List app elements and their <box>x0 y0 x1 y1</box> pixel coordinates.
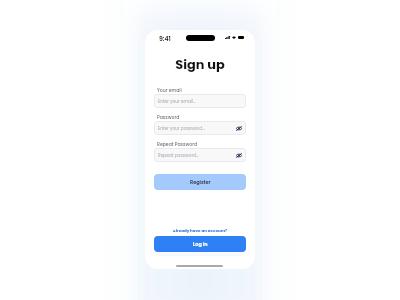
staticText: Password <box>157 114 180 120</box>
staticText: Register <box>190 179 211 186</box>
staticText: Your email <box>157 87 182 93</box>
button[interactable]: Already have an account? <box>145 228 255 234</box>
button[interactable]: Repeat password... <box>154 148 246 162</box>
staticText: Enter your password... <box>158 125 236 131</box>
staticText: 9:41 <box>159 34 171 43</box>
button[interactable]: Log in <box>154 236 246 252</box>
button[interactable]: Register <box>154 174 246 190</box>
button[interactable]: Enter your password... <box>154 121 246 135</box>
other: Toggle password visibility <box>236 153 242 158</box>
button[interactable]: Enter your email... <box>154 94 246 108</box>
staticText: Repeat Password <box>157 141 198 147</box>
staticText: Enter your email... <box>158 98 242 104</box>
staticText: Sign up <box>145 55 255 73</box>
staticText: Repeat password... <box>158 152 236 158</box>
staticText: Log in <box>193 241 208 248</box>
other: Toggle password visibility <box>236 126 242 131</box>
